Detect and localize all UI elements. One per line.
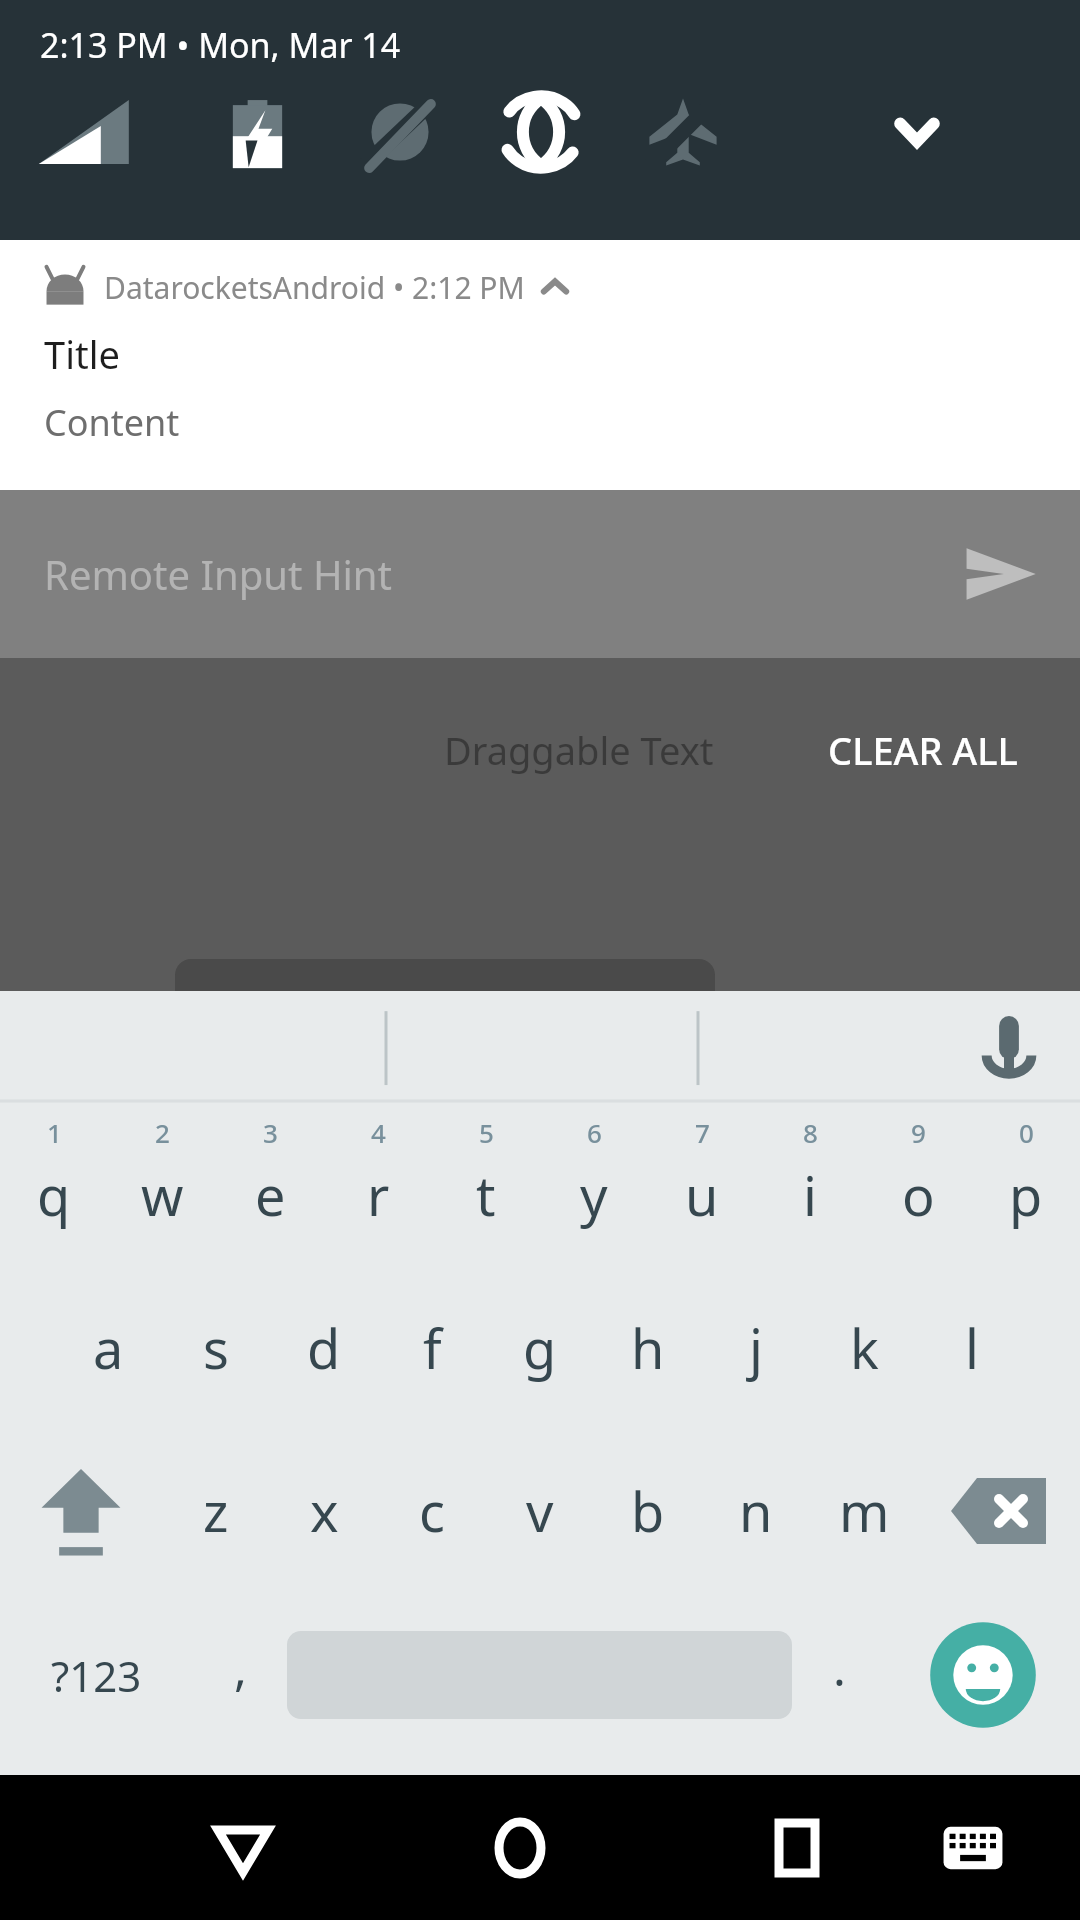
staticText: 6 bbox=[587, 1115, 602, 1150]
button[interactable]: Emoji bbox=[886, 1593, 1080, 1757]
staticText: o bbox=[902, 1158, 935, 1232]
button[interactable]: Recents bbox=[747, 1798, 847, 1898]
button[interactable]: Switch keyboard bbox=[927, 1802, 1019, 1894]
staticText: , bbox=[234, 1635, 247, 1700]
button[interactable]: 3 bbox=[216, 1103, 324, 1266]
button[interactable]: 5 bbox=[432, 1103, 540, 1266]
staticText: t bbox=[476, 1158, 496, 1232]
staticText: i bbox=[803, 1158, 817, 1232]
button[interactable]: Backspace bbox=[918, 1429, 1080, 1593]
staticText: n bbox=[739, 1474, 773, 1548]
staticText: b bbox=[631, 1474, 665, 1548]
button[interactable]: b bbox=[594, 1429, 702, 1593]
button[interactable]: 6 bbox=[540, 1103, 648, 1266]
button[interactable]: Home bbox=[470, 1798, 570, 1898]
staticText: j bbox=[749, 1311, 763, 1385]
staticText: q bbox=[37, 1158, 71, 1232]
staticText: 4 bbox=[371, 1115, 386, 1150]
staticText: f bbox=[423, 1311, 442, 1385]
button[interactable]: Remote Input Hint bbox=[0, 490, 1080, 658]
button[interactable]: m bbox=[810, 1429, 918, 1593]
button[interactable]: , bbox=[193, 1593, 287, 1757]
button[interactable]: ?123 bbox=[0, 1593, 193, 1757]
button[interactable]: Back bbox=[193, 1798, 293, 1898]
button[interactable]: f bbox=[378, 1266, 486, 1429]
staticText: w bbox=[141, 1158, 184, 1232]
button[interactable]: CLEAR ALL bbox=[818, 716, 1028, 784]
staticText: v bbox=[526, 1474, 554, 1548]
button[interactable]: k bbox=[810, 1266, 918, 1429]
staticText: p bbox=[1009, 1158, 1043, 1232]
staticText: CLEAR ALL bbox=[828, 724, 1018, 776]
button[interactable]: 0 bbox=[972, 1103, 1080, 1266]
staticText: l bbox=[965, 1311, 979, 1385]
staticText: Title bbox=[44, 328, 120, 380]
staticText: 2 bbox=[155, 1115, 170, 1150]
button[interactable]: c bbox=[378, 1429, 486, 1593]
staticText: DatarocketsAndroid • 2:12 PM bbox=[104, 267, 525, 308]
button[interactable]: 7 bbox=[648, 1103, 756, 1266]
button[interactable]: . bbox=[792, 1593, 886, 1757]
button[interactable]: Send bbox=[962, 536, 1038, 612]
staticText: x bbox=[310, 1474, 339, 1548]
button[interactable]: 2 bbox=[108, 1103, 216, 1266]
button[interactable]: x bbox=[270, 1429, 378, 1593]
staticText: y bbox=[580, 1158, 608, 1232]
button[interactable]: v bbox=[486, 1429, 594, 1593]
button[interactable]: z bbox=[162, 1429, 270, 1593]
button[interactable]: 4 bbox=[324, 1103, 432, 1266]
staticText: u bbox=[685, 1158, 719, 1232]
button[interactable]: Draggable Text bbox=[434, 716, 724, 784]
button[interactable]: l bbox=[918, 1266, 1026, 1429]
button[interactable]: j bbox=[702, 1266, 810, 1429]
staticText: z bbox=[203, 1474, 229, 1548]
staticText: 5 bbox=[479, 1115, 494, 1150]
staticText: r bbox=[367, 1158, 390, 1232]
button[interactable]: 9 bbox=[864, 1103, 972, 1266]
staticText: Content bbox=[44, 398, 180, 447]
staticText: . bbox=[833, 1635, 846, 1700]
button[interactable]: a bbox=[54, 1266, 162, 1429]
staticText: g bbox=[523, 1311, 557, 1385]
button[interactable]: Shift bbox=[0, 1429, 162, 1593]
button[interactable]: 8 bbox=[756, 1103, 864, 1266]
button[interactable]: DatarocketsAndroid • 2:12 PM bbox=[0, 240, 1080, 490]
staticText: 9 bbox=[911, 1115, 926, 1150]
button[interactable]: Voice input bbox=[966, 1004, 1052, 1090]
button[interactable]: s bbox=[162, 1266, 270, 1429]
staticText: d bbox=[307, 1311, 341, 1385]
staticText: 1 bbox=[47, 1115, 62, 1150]
button[interactable]: h bbox=[594, 1266, 702, 1429]
staticText: 2:13 PM • Mon, Mar 14 bbox=[40, 22, 401, 68]
staticText: 7 bbox=[695, 1115, 710, 1150]
button[interactable] bbox=[287, 1593, 792, 1757]
staticText: 8 bbox=[803, 1115, 818, 1150]
staticText: Draggable Text bbox=[444, 724, 714, 776]
staticText: h bbox=[631, 1311, 665, 1385]
staticText: ?123 bbox=[51, 1647, 142, 1704]
staticText: Remote Input Hint bbox=[44, 547, 392, 601]
staticText: e bbox=[255, 1158, 286, 1232]
staticText: s bbox=[203, 1311, 229, 1385]
staticText: c bbox=[419, 1474, 445, 1548]
button[interactable]: 1 bbox=[0, 1103, 108, 1266]
staticText: m bbox=[839, 1474, 890, 1548]
button[interactable]: n bbox=[702, 1429, 810, 1593]
button[interactable]: d bbox=[270, 1266, 378, 1429]
staticText: 0 bbox=[1019, 1115, 1034, 1150]
staticText: k bbox=[850, 1311, 879, 1385]
staticText: 3 bbox=[263, 1115, 278, 1150]
button[interactable]: g bbox=[486, 1266, 594, 1429]
staticText: a bbox=[93, 1311, 124, 1385]
